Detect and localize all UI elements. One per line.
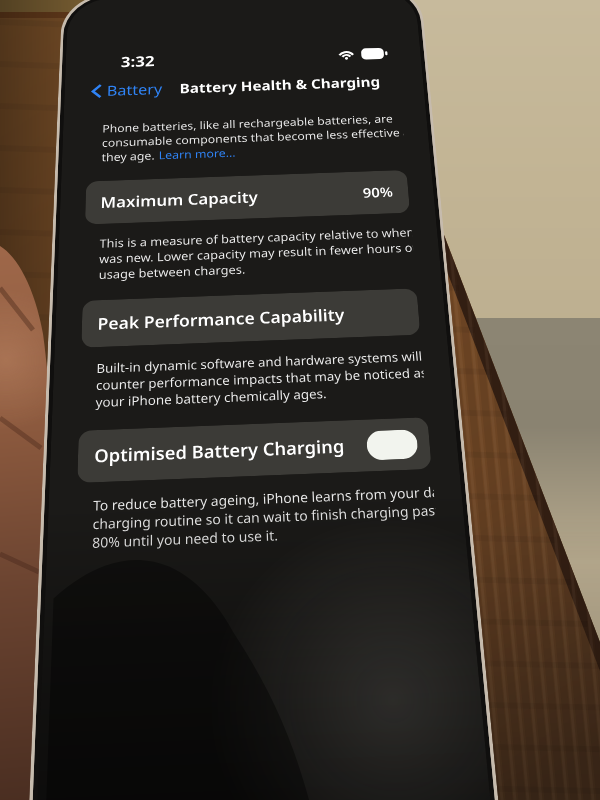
button[interactable]: Battery [90,79,167,101]
button[interactable]: Maximum Capacity [83,170,411,225]
staticText: usage between charges. [98,261,246,282]
staticText: Built-in dynamic software and hardware s… [95,348,423,377]
staticText: Battery [106,79,163,100]
staticText: 90% [362,183,394,202]
staticText: To reduce battery ageing, iPhone learns … [92,483,435,515]
staticText: your iPhone battery chemically ages. [95,385,327,411]
staticText: 3:32 [120,51,156,72]
staticText: charging routine so it can wait to finis… [92,501,437,533]
staticText: Maximum Capacity [99,187,259,213]
button[interactable]: Optimised Battery Charging [75,417,432,483]
staticText: 80% until you need to use it. [91,526,279,552]
button[interactable]: Peak Performance Capability [79,288,421,348]
button[interactable]: Optimised Battery Charging, on [366,429,419,461]
staticText: consumable components that become less e… [101,125,404,150]
staticText: counter performance impacts that may be … [95,364,425,394]
staticText: This is a measure of battery capacity re… [99,224,413,251]
staticText: Optimised Battery Charging [93,434,345,468]
button[interactable]: Learn more... [158,145,236,163]
staticText: Peak Performance Capability [96,303,346,335]
staticText: they age. [101,148,159,165]
staticText: Battery Health & Charging [179,73,381,97]
staticText: was new. Lower capacity may result in fe… [98,240,414,267]
staticText: Phone batteries, like all rechargeable b… [101,111,394,136]
